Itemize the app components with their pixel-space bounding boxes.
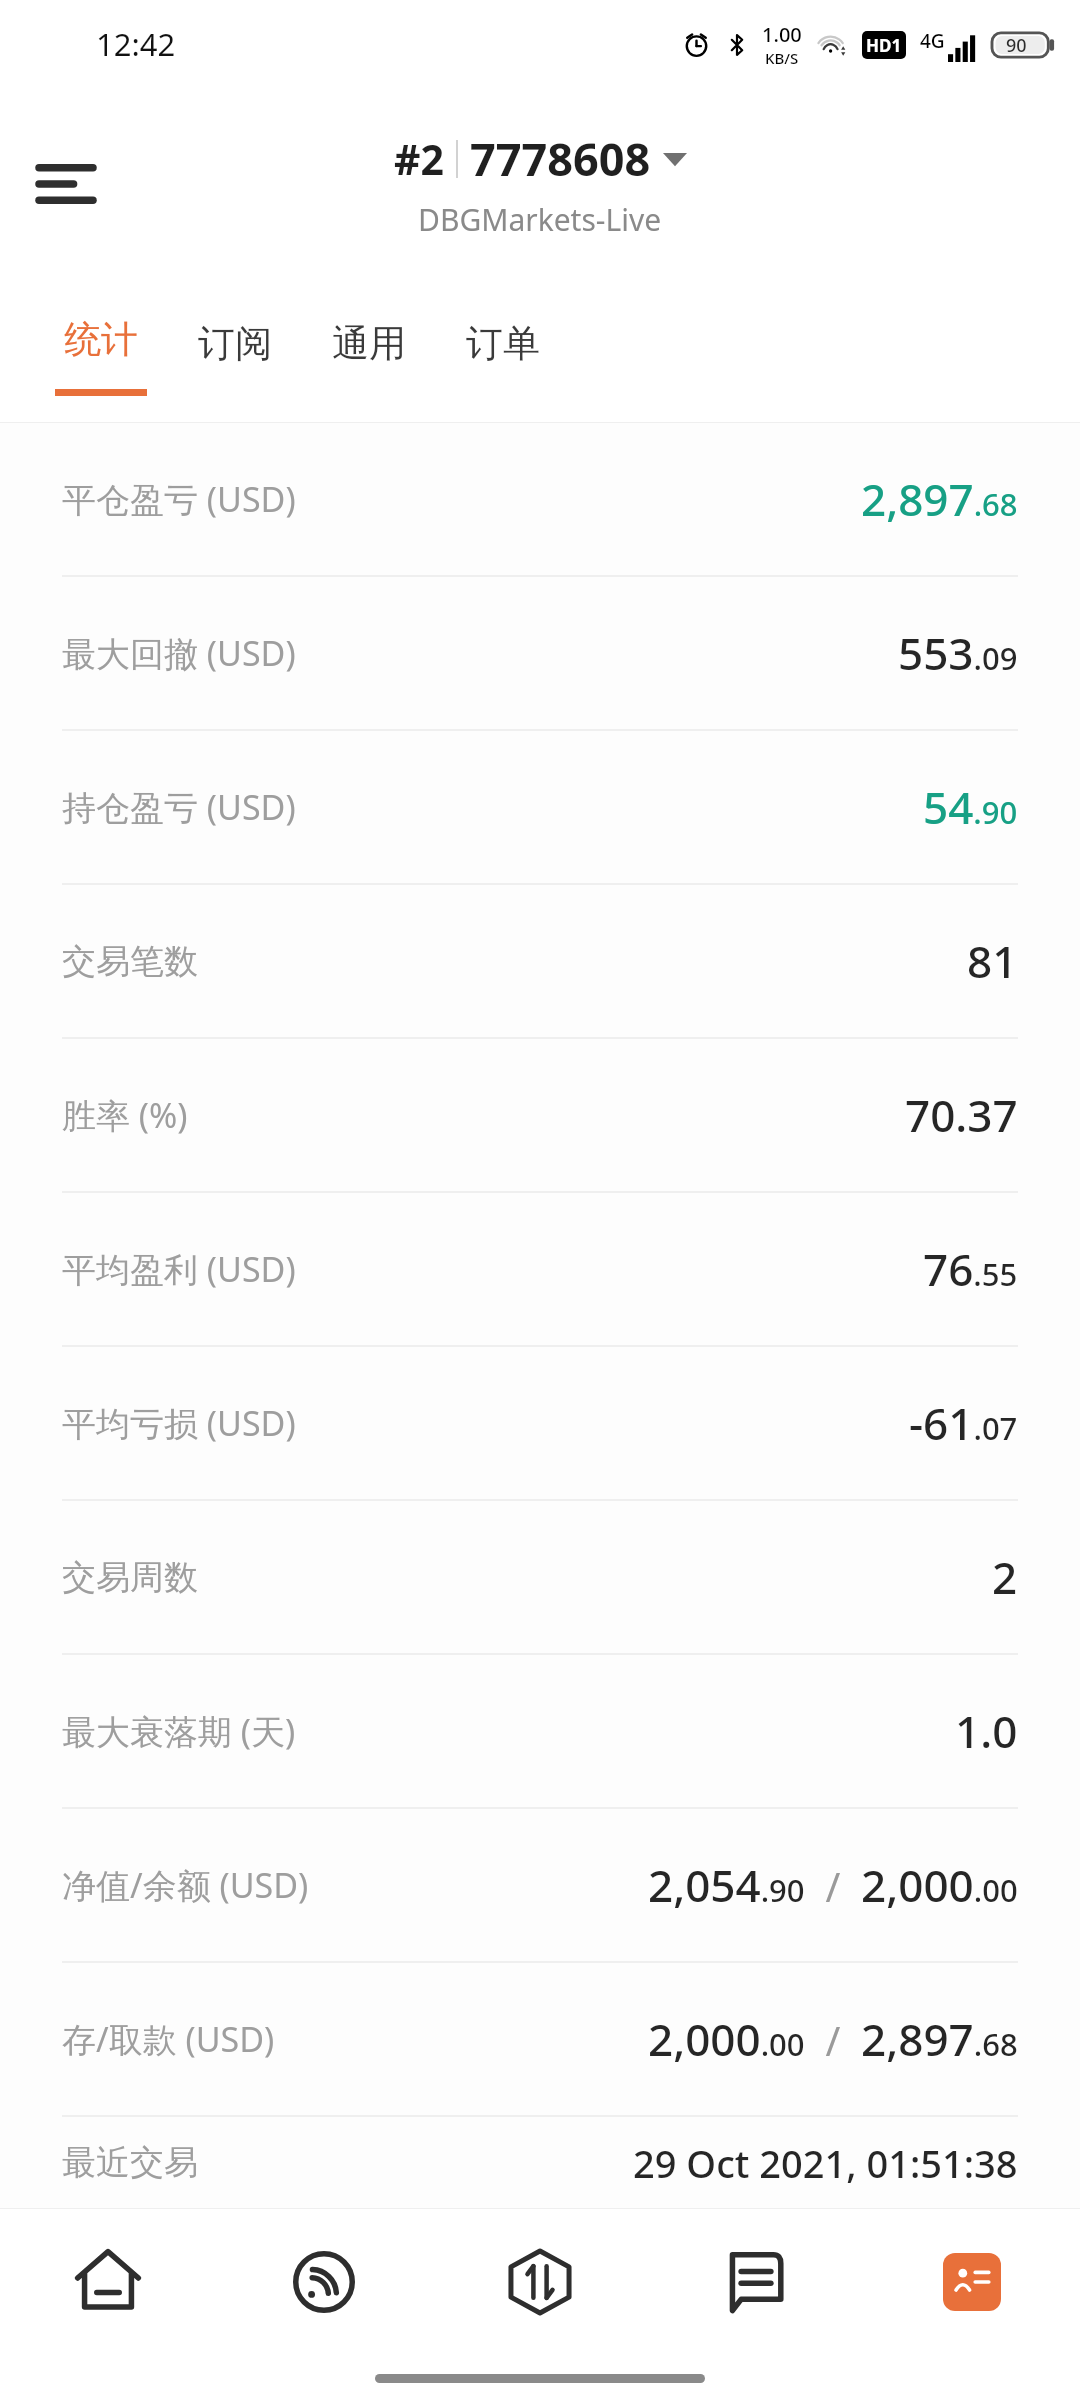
staticText: 553.09 — [898, 623, 1018, 683]
staticText: #2 — [394, 131, 444, 187]
button[interactable]: Messages — [648, 2208, 864, 2356]
staticText: 70.37 — [905, 1085, 1018, 1145]
staticText: 2,897.68 — [861, 469, 1018, 529]
staticText: 81 — [967, 931, 1018, 991]
button[interactable]: #2 — [0, 128, 1080, 240]
staticText: 2,000.00 / 2,897.68 — [648, 2009, 1018, 2069]
staticText: 4G — [920, 28, 945, 54]
staticText: 胜率 (%) — [62, 1092, 188, 1138]
button[interactable]: 订阅 — [174, 280, 296, 422]
staticText: 1.0 — [955, 1701, 1018, 1761]
button[interactable]: 存/取款 (USD) — [0, 1963, 1080, 2117]
staticText: HD1 — [866, 34, 902, 57]
button[interactable]: 平均亏损 (USD) — [0, 1347, 1080, 1501]
button[interactable]: Menu — [24, 142, 108, 226]
staticText: 2 — [992, 1547, 1018, 1607]
button[interactable]: Trade — [432, 2208, 648, 2356]
staticText: 1.00 — [762, 21, 802, 48]
staticText: 存/取款 (USD) — [62, 2016, 275, 2062]
staticText: 订阅 — [198, 320, 272, 367]
staticText: 净值/余额 (USD) — [62, 1862, 309, 1908]
button[interactable]: 统计 — [40, 280, 162, 422]
staticText: 持仓盈亏 (USD) — [62, 784, 296, 830]
staticText: 平均盈利 (USD) — [62, 1246, 296, 1292]
button[interactable]: 平仓盈亏 (USD) — [0, 423, 1080, 577]
staticText: 12:42 — [96, 23, 176, 65]
staticText: DBGMarkets-Live — [418, 199, 662, 240]
staticText: 订单 — [466, 320, 540, 367]
staticText: 7778608 — [470, 128, 651, 189]
button[interactable]: Profile — [864, 2208, 1080, 2356]
staticText: 90 — [1006, 33, 1027, 58]
staticText: 2,054.90 / 2,000.00 — [648, 1855, 1018, 1915]
button[interactable]: 交易周数 — [0, 1501, 1080, 1655]
staticText: KB/S — [765, 48, 799, 68]
button[interactable]: Home — [0, 2208, 216, 2356]
staticText: 最近交易 — [62, 2141, 198, 2184]
staticText: 交易周数 — [62, 1556, 198, 1599]
button[interactable]: 最近交易 — [0, 2117, 1080, 2208]
button[interactable]: 持仓盈亏 (USD) — [0, 731, 1080, 885]
staticText: 54.90 — [923, 777, 1018, 837]
button[interactable]: 平均盈利 (USD) — [0, 1193, 1080, 1347]
button[interactable]: 通用 — [308, 280, 430, 422]
button[interactable]: 最大衰落期 (天) — [0, 1655, 1080, 1809]
staticText: 统计 — [64, 316, 138, 363]
staticText: 平均亏损 (USD) — [62, 1400, 296, 1446]
staticText: 76.55 — [923, 1239, 1018, 1299]
staticText: 交易笔数 — [62, 940, 198, 983]
staticText: -61.07 — [909, 1393, 1018, 1453]
staticText: 29 Oct 2021, 01:51:38 — [633, 2137, 1018, 2189]
staticText: 通用 — [332, 320, 406, 367]
staticText: 平仓盈亏 (USD) — [62, 476, 296, 522]
button[interactable]: 最大回撤 (USD) — [0, 577, 1080, 731]
button[interactable]: 净值/余额 (USD) — [0, 1809, 1080, 1963]
staticText: 最大衰落期 (天) — [62, 1708, 296, 1754]
button[interactable]: 订单 — [442, 280, 564, 422]
staticText: 最大回撤 (USD) — [62, 630, 296, 676]
button[interactable]: 交易笔数 — [0, 885, 1080, 1039]
button[interactable]: 胜率 (%) — [0, 1039, 1080, 1193]
button[interactable]: Quotes — [216, 2208, 432, 2356]
